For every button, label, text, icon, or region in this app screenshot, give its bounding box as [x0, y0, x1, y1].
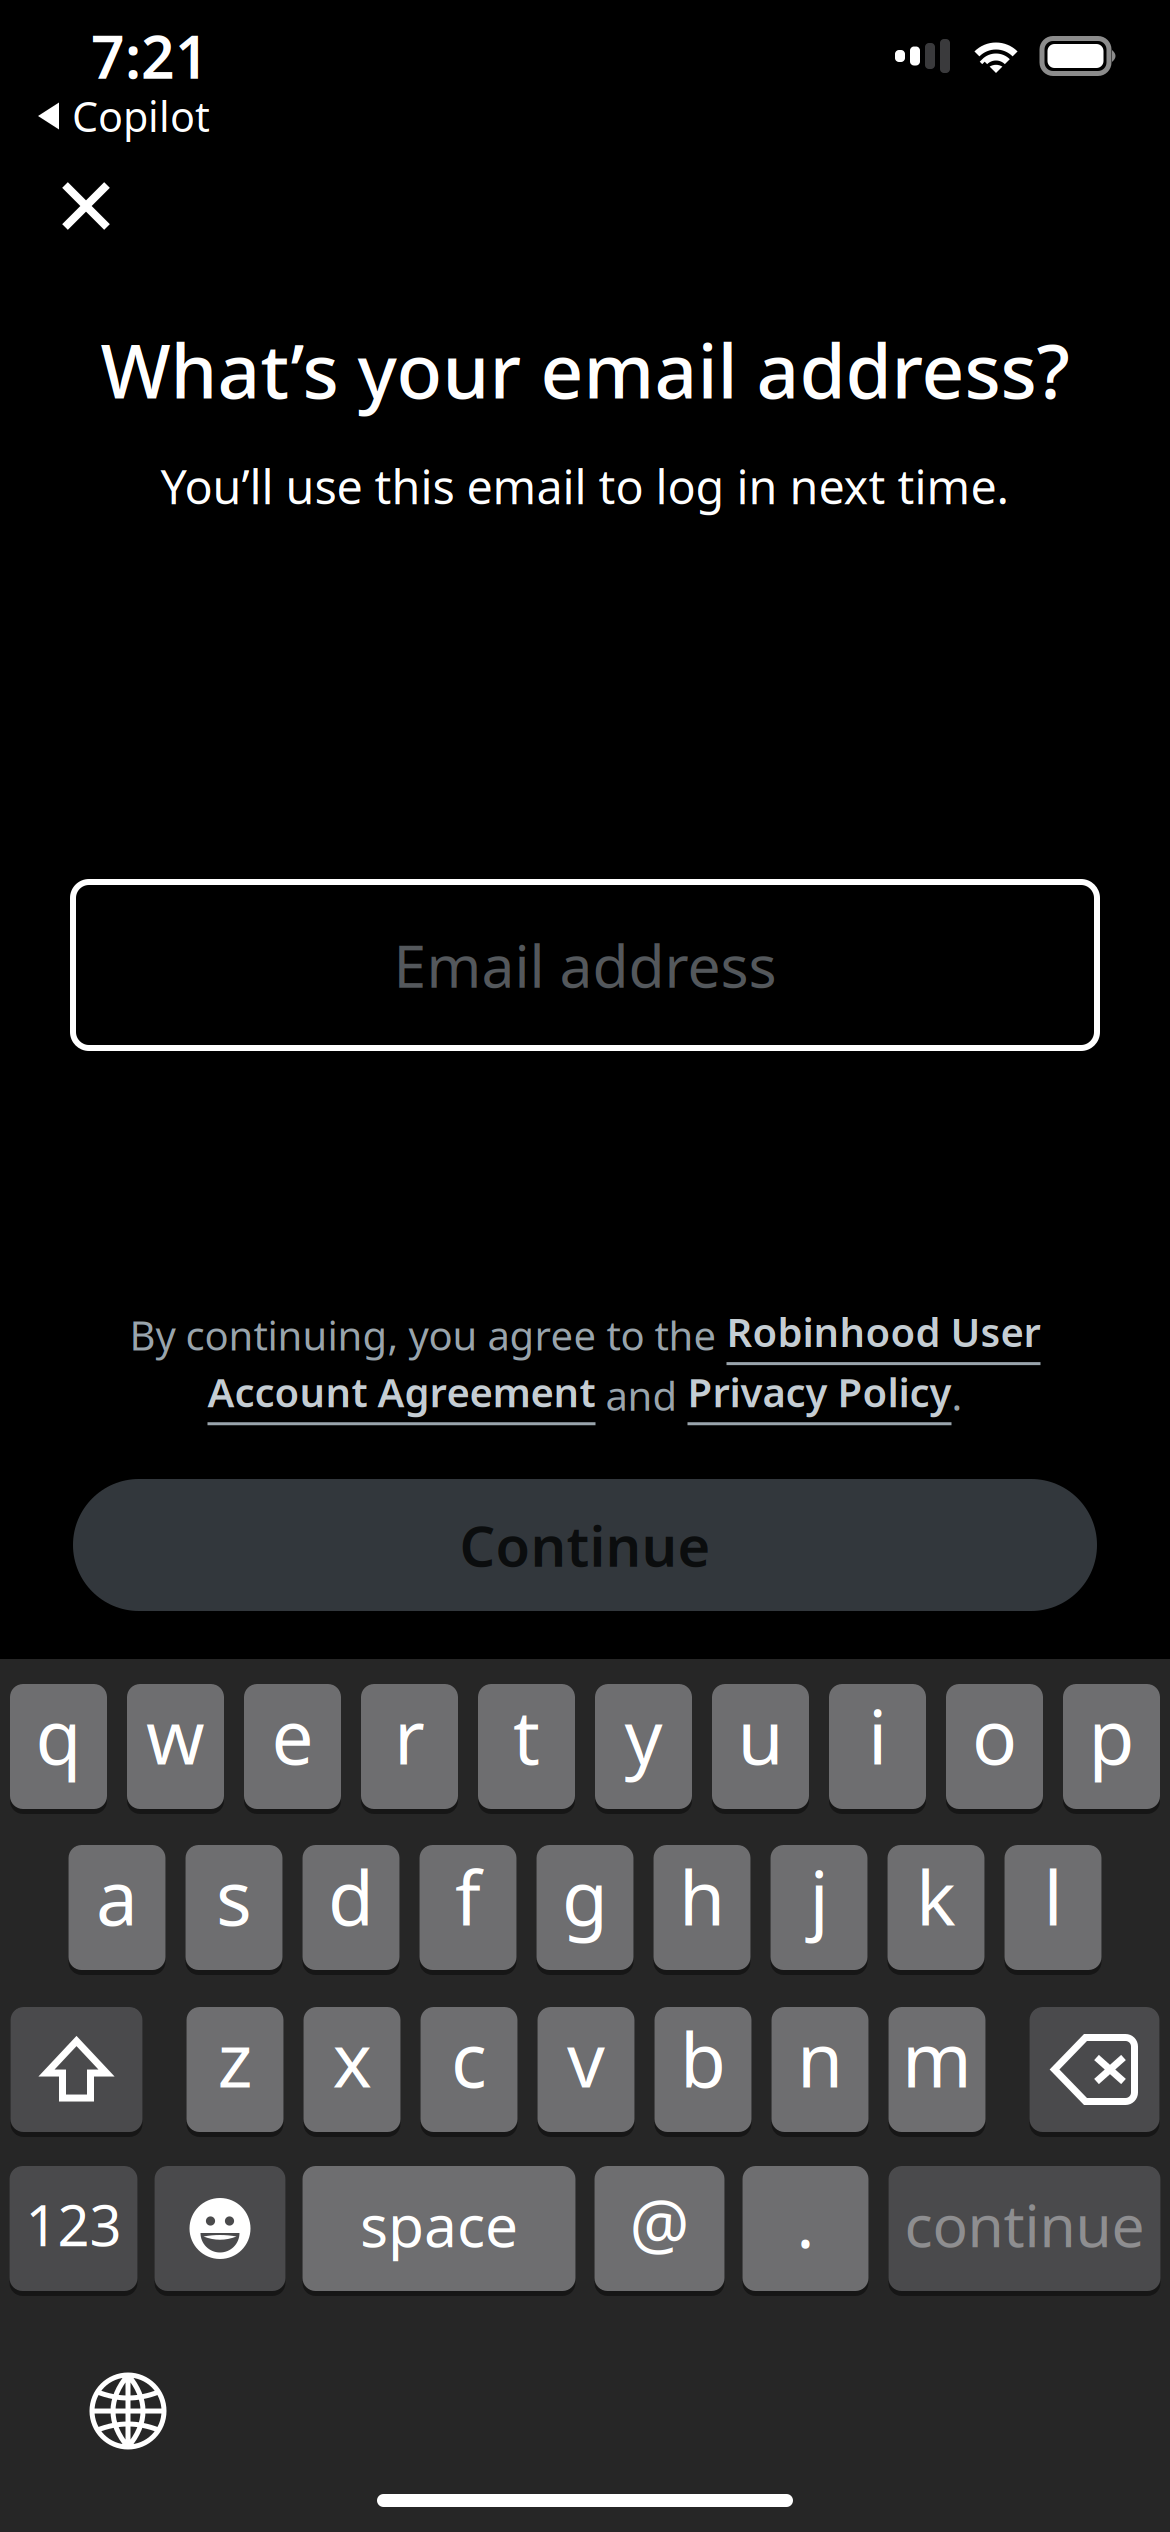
button[interactable]: s — [185, 1845, 282, 1975]
button[interactable]: Delete — [1029, 2007, 1159, 2137]
staticText: w — [146, 1686, 205, 1785]
staticText: k — [916, 1847, 956, 1946]
button[interactable]: y — [595, 1684, 692, 1814]
button[interactable]: j — [770, 1845, 867, 1975]
button[interactable]: k — [887, 1845, 984, 1975]
staticText: q — [35, 1686, 81, 1785]
staticText: o — [972, 1686, 1017, 1785]
staticText: 123 — [25, 2187, 121, 2262]
staticText: space — [360, 2185, 518, 2263]
staticText: . — [951, 1369, 962, 1422]
button[interactable]: Robinhood User — [726, 1305, 1040, 1365]
staticText: . — [796, 2178, 814, 2267]
staticText: j — [809, 1847, 828, 1946]
staticText: Continue — [459, 1508, 710, 1582]
staticText: i — [868, 1686, 887, 1785]
staticText: x — [332, 2009, 371, 2108]
staticText: Privacy Policy — [687, 1365, 951, 1418]
staticText: @ — [629, 2178, 689, 2267]
button[interactable]: Shift — [10, 2007, 142, 2137]
button[interactable]: d — [302, 1845, 399, 1975]
button[interactable]: space — [302, 2166, 575, 2296]
staticText: z — [217, 2009, 252, 2108]
staticText: u — [737, 1686, 783, 1785]
staticText: and — [595, 1369, 687, 1422]
button[interactable]: x — [303, 2007, 400, 2137]
staticText: Email address — [393, 926, 776, 1004]
staticText: Robinhood User — [726, 1305, 1040, 1358]
staticText: continue — [904, 2185, 1144, 2263]
button[interactable]: r — [361, 1684, 458, 1814]
button[interactable]: z — [186, 2007, 283, 2137]
staticText: s — [216, 1847, 252, 1946]
button[interactable]: t — [478, 1684, 575, 1814]
button[interactable]: v — [537, 2007, 634, 2137]
button[interactable]: Copilot — [0, 91, 210, 141]
button[interactable]: w — [127, 1684, 224, 1814]
button[interactable]: f — [419, 1845, 516, 1975]
button[interactable]: Emoji — [154, 2166, 285, 2296]
staticText: n — [797, 2009, 843, 2108]
staticText: g — [562, 1847, 608, 1946]
staticText: Copilot — [72, 89, 210, 143]
staticText: f — [455, 1847, 481, 1946]
staticText: 7:21 — [91, 17, 209, 95]
staticText: t — [513, 1686, 540, 1785]
button[interactable]: b — [654, 2007, 751, 2137]
button[interactable]: Account Agreement — [207, 1365, 595, 1425]
staticText: r — [394, 1686, 425, 1785]
button[interactable]: a — [68, 1845, 165, 1975]
button[interactable]: e — [244, 1684, 341, 1814]
button[interactable]: g — [536, 1845, 633, 1975]
button[interactable]: n — [771, 2007, 868, 2137]
staticText: By continuing, you agree to the — [129, 1308, 726, 1362]
button[interactable]: m — [888, 2007, 985, 2137]
staticText: Account Agreement — [207, 1365, 595, 1418]
button[interactable]: Next keyboard — [89, 2372, 167, 2450]
button[interactable]: q — [10, 1684, 107, 1814]
staticText: d — [328, 1847, 374, 1946]
staticText: b — [680, 2009, 726, 2108]
button[interactable]: i — [829, 1684, 926, 1814]
button[interactable]: Continue — [73, 1479, 1097, 1611]
staticText: a — [96, 1847, 138, 1946]
button[interactable]: u — [712, 1684, 809, 1814]
button[interactable]: h — [653, 1845, 750, 1975]
button[interactable]: @ — [594, 2166, 724, 2296]
button[interactable]: 123 — [9, 2166, 137, 2296]
staticText: y — [624, 1686, 662, 1785]
button[interactable]: Close — [39, 152, 133, 253]
button[interactable]: l — [1004, 1845, 1101, 1975]
button[interactable]: p — [1063, 1684, 1160, 1814]
button[interactable]: Email address — [73, 882, 1097, 1048]
button[interactable]: continue — [888, 2166, 1160, 2296]
staticText: l — [1043, 1847, 1062, 1946]
staticText: p — [1088, 1686, 1134, 1785]
staticText: h — [679, 1847, 725, 1946]
staticText: You’ll use this email to log in next tim… — [160, 455, 1009, 517]
staticText: What’s your email address? — [100, 320, 1069, 419]
button[interactable]: c — [420, 2007, 517, 2137]
button[interactable]: . — [742, 2166, 868, 2296]
staticText: c — [451, 2009, 487, 2108]
staticText: e — [271, 1686, 313, 1785]
button[interactable]: Privacy Policy — [687, 1365, 951, 1425]
staticText: m — [902, 2009, 972, 2108]
button[interactable]: o — [946, 1684, 1043, 1814]
staticText: v — [567, 2009, 605, 2108]
